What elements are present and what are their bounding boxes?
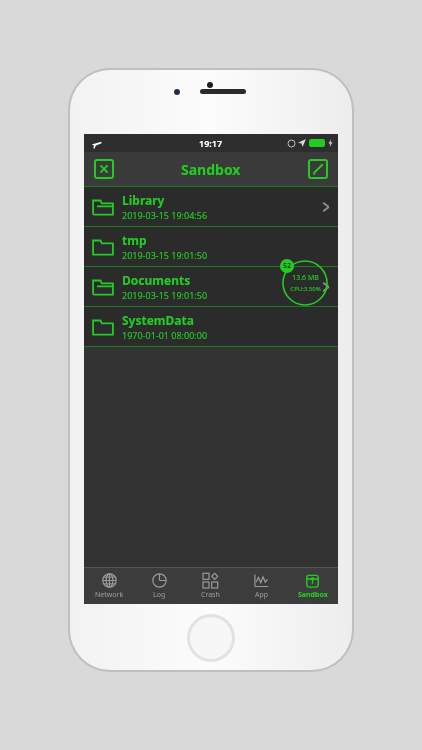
button[interactable]: Documents: [84, 267, 338, 306]
button[interactable]: Network: [84, 568, 134, 604]
staticText: Sandbox: [181, 160, 241, 179]
staticText: Library: [122, 192, 165, 208]
staticText: App: [255, 590, 269, 600]
button[interactable]: Edit: [308, 159, 328, 179]
button[interactable]: App: [236, 568, 287, 604]
staticText: 1970-01-01 08:00:00: [122, 329, 208, 341]
button[interactable]: Library: [84, 187, 338, 226]
staticText: Sandbox: [298, 590, 328, 600]
button[interactable]: Sandbox: [287, 568, 338, 604]
staticText: 2019-03-15 19:01:50: [122, 289, 208, 301]
button[interactable]: SystemData: [84, 307, 338, 346]
button[interactable]: Close: [94, 159, 114, 179]
staticText: 2019-03-15 19:01:50: [122, 249, 208, 261]
button[interactable]: Crash: [185, 568, 236, 604]
staticText: 19:17: [199, 137, 223, 149]
staticText: 13.6 MB: [292, 273, 319, 283]
staticText: 2019-03-15 19:04:56: [122, 209, 208, 221]
staticText: Crash: [201, 590, 220, 600]
button[interactable]: Performance monitor: [282, 260, 328, 306]
staticText: Documents: [122, 272, 191, 288]
button[interactable]: Log: [134, 568, 185, 604]
staticText: CPU:3.50%: [290, 285, 321, 293]
staticText: Log: [153, 590, 166, 600]
staticText: Network: [95, 590, 124, 600]
staticText: 52: [283, 261, 292, 271]
button[interactable]: tmp: [84, 227, 338, 266]
staticText: tmp: [122, 232, 147, 248]
staticText: SystemData: [122, 312, 194, 328]
